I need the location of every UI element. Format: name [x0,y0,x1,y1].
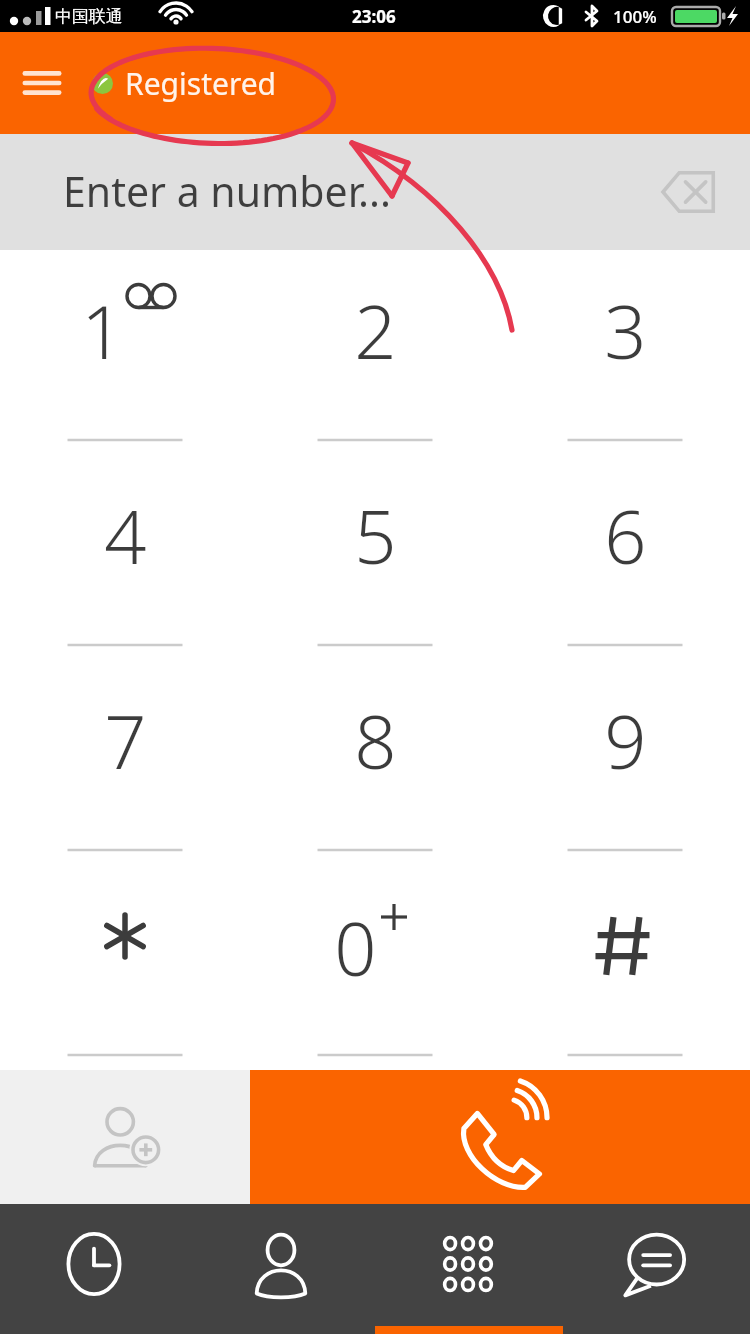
button[interactable]: Messages [562,1204,750,1334]
staticText: 9 [604,690,647,791]
button[interactable]: Add contact [0,1070,250,1204]
button[interactable] [0,865,250,1070]
button[interactable]: Menu [10,51,74,115]
staticText: 5 [354,485,397,586]
staticText: 中国联通 [55,6,123,27]
button[interactable]: 0 [250,865,500,1070]
button[interactable]: 1 [0,250,250,455]
staticText: 3 [604,280,647,381]
button[interactable]: Registered [88,57,281,110]
staticText: 23:06 [352,5,396,28]
button[interactable]: 2 [250,250,500,455]
button[interactable]: 4 [0,455,250,660]
staticText: 6 [604,485,647,586]
staticText: 0 [334,897,377,998]
button[interactable]: Call [250,1070,750,1204]
staticText: 7 [104,690,147,791]
staticText: Enter a number... [63,163,391,219]
button[interactable]: Dialpad [374,1204,562,1334]
button[interactable]: 7 [0,660,250,865]
button[interactable]: 6 [500,455,750,660]
button[interactable]: 3 [500,250,750,455]
staticText: 2 [354,280,397,381]
button[interactable]: Backspace [644,154,720,230]
staticText: 8 [354,690,397,791]
button[interactable]: 8 [250,660,500,865]
button[interactable]: 9 [500,660,750,865]
staticText: Registered [125,63,277,104]
staticText: 1 [81,280,124,381]
button[interactable]: Contacts [187,1204,374,1334]
button[interactable]: Recent calls [0,1204,187,1334]
staticText: 100% [613,5,657,28]
staticText: 4 [104,485,147,586]
button[interactable] [500,865,750,1070]
button[interactable]: 5 [250,455,500,660]
